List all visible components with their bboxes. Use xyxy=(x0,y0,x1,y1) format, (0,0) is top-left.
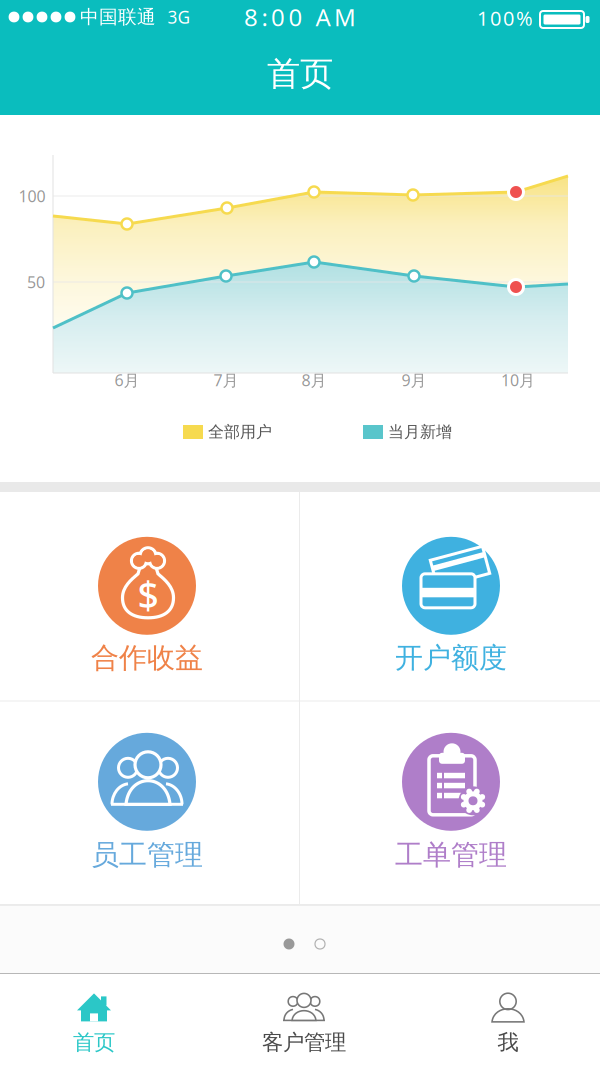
staticText: 中国联通 xyxy=(80,5,156,28)
button[interactable]: $ xyxy=(0,503,296,708)
staticText: 9月 xyxy=(401,369,426,391)
staticText: 首页 xyxy=(267,53,333,94)
staticText: 8:00 AM xyxy=(244,1,356,33)
button[interactable]: 开户额度 xyxy=(301,503,600,708)
button[interactable]: 我 xyxy=(419,981,597,1067)
staticText: 100% xyxy=(477,5,533,31)
button[interactable]: 客户管理 xyxy=(198,981,410,1067)
staticText: $ xyxy=(137,570,158,620)
staticText: 10月 xyxy=(501,369,535,391)
staticText: 我 xyxy=(497,1029,518,1056)
staticText: 合作收益 xyxy=(91,641,203,675)
staticText: 6月 xyxy=(114,369,139,391)
button[interactable]: 首页 xyxy=(5,981,183,1067)
staticText: 50 xyxy=(27,271,45,293)
staticText: 员工管理 xyxy=(91,838,203,872)
staticText: 7月 xyxy=(213,369,238,391)
staticText: 当月新增 xyxy=(388,422,452,442)
staticText: 全部用户 xyxy=(208,422,272,442)
staticText: 客户管理 xyxy=(262,1029,346,1056)
button[interactable]: 员工管理 xyxy=(0,701,296,903)
staticText: 8月 xyxy=(301,369,326,391)
staticText: 工单管理 xyxy=(395,838,507,872)
staticText: 100 xyxy=(18,185,45,207)
button[interactable]: 工单管理 xyxy=(301,701,600,903)
staticText: 首页 xyxy=(73,1029,115,1056)
staticText: 开户额度 xyxy=(395,641,507,675)
staticText: 3G xyxy=(167,5,190,28)
